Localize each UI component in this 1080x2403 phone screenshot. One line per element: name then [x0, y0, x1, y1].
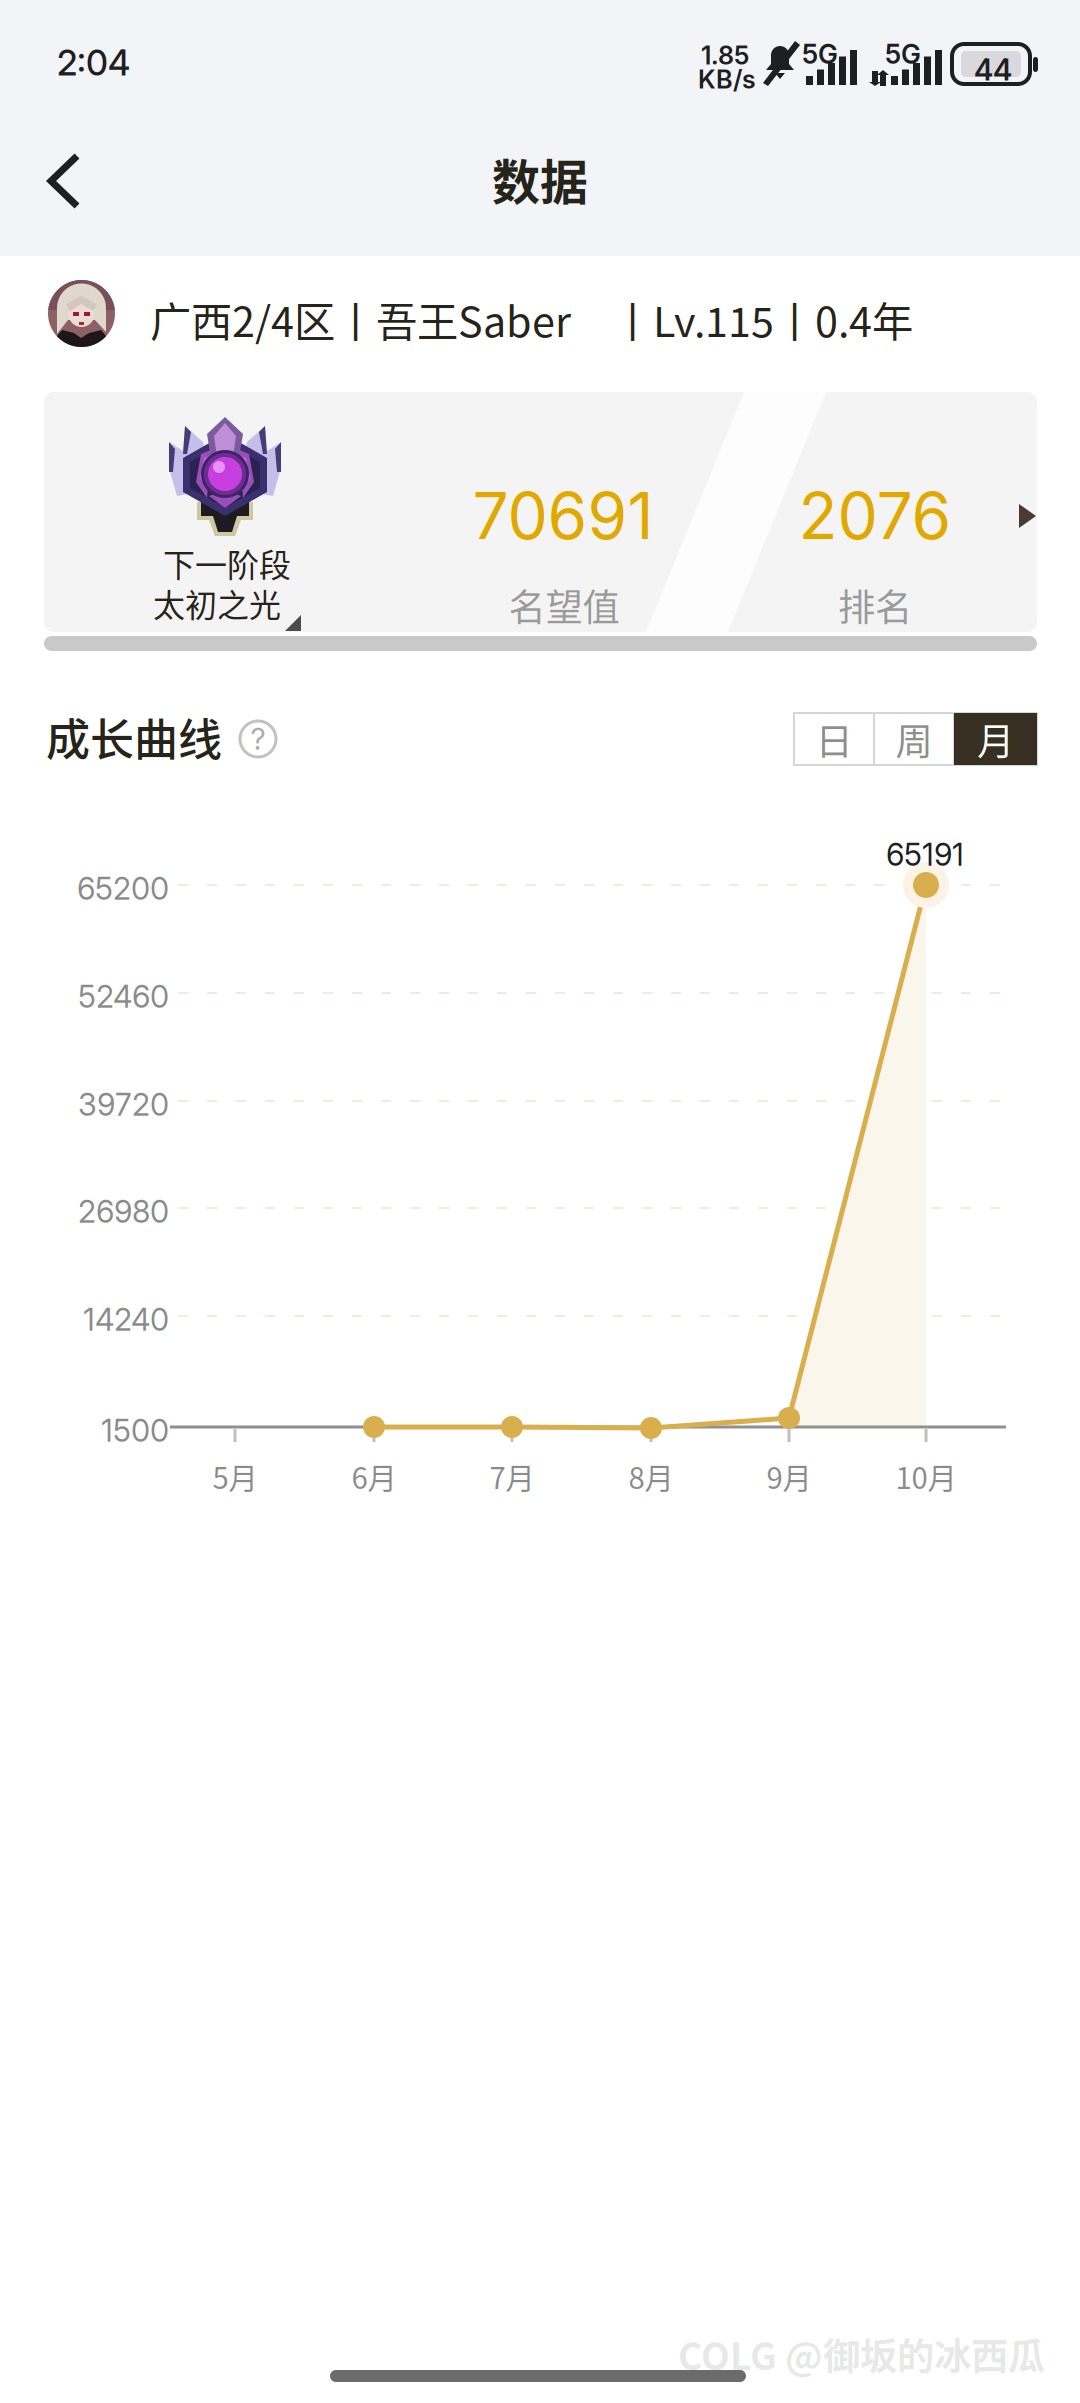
staticText: 2076	[798, 477, 951, 554]
staticText: 10月	[895, 1455, 956, 1497]
staticText: 周	[895, 712, 932, 766]
staticText: 5G	[885, 38, 921, 70]
button[interactable]: 日	[794, 713, 874, 765]
staticText: 7月	[489, 1455, 534, 1497]
staticText: 26980	[78, 1193, 169, 1230]
staticText: 月	[977, 712, 1014, 766]
staticText: 名望值	[508, 578, 619, 632]
staticText: 39720	[78, 1086, 169, 1123]
staticText: 65191	[886, 836, 964, 873]
staticText: 9月	[766, 1455, 811, 1497]
staticText: 5月	[212, 1455, 257, 1497]
staticText: COLG @御坂的冰西瓜	[678, 2327, 1045, 2381]
staticText: 2:04	[57, 42, 130, 84]
staticText: 5G	[802, 38, 838, 70]
staticText: 数据	[492, 144, 588, 213]
staticText: 14240	[83, 1301, 169, 1338]
staticText: 排名	[838, 578, 912, 632]
button[interactable]: 广西2/4区丨吾王Saber 丨Lv.115丨0.4年	[0, 258, 1080, 368]
staticText: 52460	[78, 978, 169, 1015]
staticText: 太初之光	[153, 580, 281, 626]
button[interactable]: Help	[232, 713, 284, 765]
button[interactable]: 周	[874, 713, 954, 765]
staticText: 70691	[472, 477, 653, 554]
staticText: 广西2/4区丨吾王Saber 丨Lv.115丨0.4年	[150, 289, 913, 349]
staticText: 成长曲线	[46, 705, 222, 769]
button[interactable]: 下一阶段	[44, 392, 1037, 632]
staticText: 1500	[101, 1412, 169, 1449]
staticText: 下一阶段	[163, 540, 291, 586]
staticText: 8月	[628, 1455, 673, 1497]
staticText: 44	[974, 52, 1012, 87]
staticText: ?	[250, 721, 265, 757]
staticText: KB/s	[698, 64, 756, 95]
staticText: 日	[815, 712, 852, 766]
staticText: 6月	[351, 1455, 396, 1497]
button[interactable]: Back	[13, 125, 129, 241]
staticText: 65200	[77, 870, 169, 907]
staticText: 1.85	[701, 40, 749, 71]
button[interactable]: 月	[954, 713, 1037, 765]
